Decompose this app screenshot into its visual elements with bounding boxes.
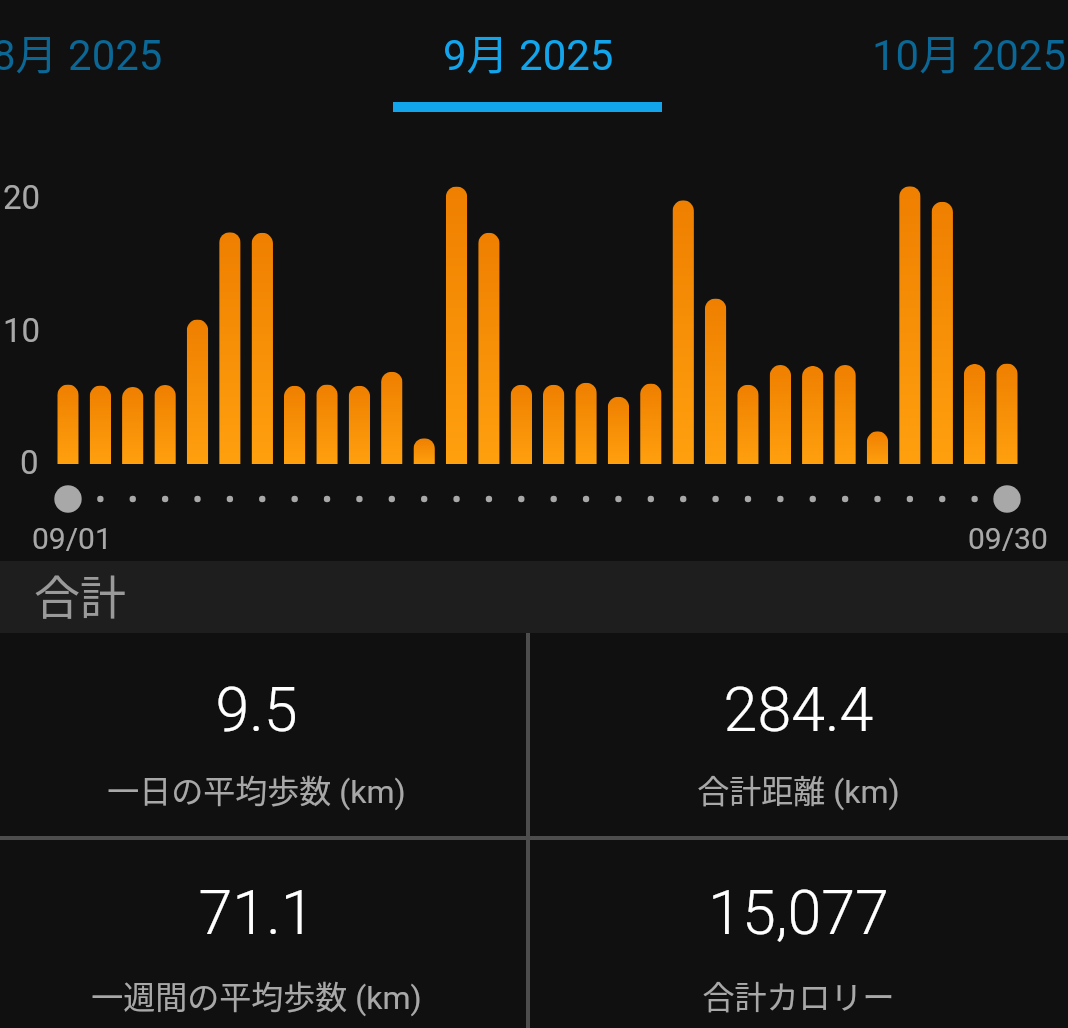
staticText: 71.1 [0, 877, 513, 948]
staticText: 合計カロリー [529, 972, 1068, 1018]
staticText: 0 [20, 443, 39, 482]
staticText: 9月 2025 [443, 21, 614, 82]
staticText: 09/30 [968, 521, 1048, 556]
staticText: 8月 2025 [0, 21, 163, 82]
staticText: 284.4 [529, 674, 1068, 745]
staticText: 一週間の平均歩数 (km) [0, 972, 513, 1018]
button[interactable]: 9月 2025 [378, 1, 678, 101]
staticText: 合計距離 (km) [529, 766, 1068, 812]
staticText: 9.5 [0, 674, 513, 745]
staticText: 一日の平均歩数 (km) [0, 766, 513, 812]
staticText: 15,077 [529, 877, 1068, 948]
button[interactable]: 9.5 [0, 633, 513, 836]
staticText: 10月 2025 [872, 21, 1067, 82]
staticText: 合計 [34, 561, 126, 628]
button[interactable]: 10月 2025 [819, 1, 1068, 101]
button[interactable]: 15,077 [529, 839, 1068, 1028]
staticText: 20 [3, 178, 41, 217]
staticText: 09/01 [32, 521, 112, 556]
button[interactable]: 71.1 [0, 839, 513, 1028]
button[interactable]: 284.4 [529, 633, 1068, 836]
staticText: 10 [3, 311, 41, 350]
button[interactable]: 8月 2025 [0, 1, 227, 101]
